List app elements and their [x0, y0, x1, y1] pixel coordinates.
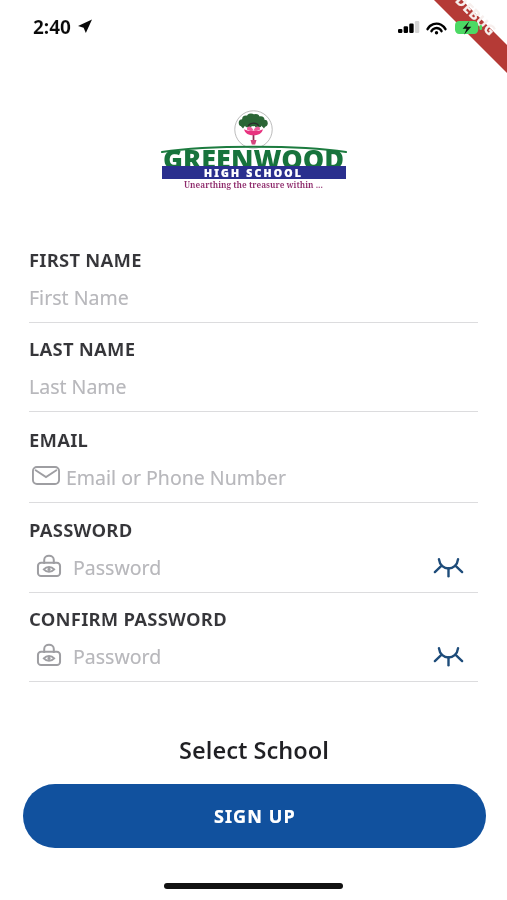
- button[interactable]: Last Name: [29, 372, 478, 400]
- button[interactable]: Select School: [0, 734, 507, 766]
- staticText: PASSWORD: [29, 517, 133, 542]
- staticText: Password: [73, 643, 428, 670]
- staticText: HIGH SCHOOL: [204, 166, 304, 179]
- staticText: DEBUG: [452, 0, 501, 40]
- staticText: SIGN UP: [214, 804, 296, 829]
- staticText: First Name: [29, 284, 478, 311]
- staticText: Last Name: [29, 373, 478, 400]
- button[interactable]: Password: [29, 553, 478, 581]
- staticText: GREENWOOD: [163, 140, 345, 177]
- button[interactable]: Password: [29, 642, 478, 670]
- button[interactable]: SIGN UP: [23, 784, 486, 848]
- button[interactable]: Show password: [428, 553, 468, 581]
- staticText: EMAIL: [29, 427, 89, 452]
- button[interactable]: Show password: [428, 642, 468, 670]
- staticText: CONFIRM PASSWORD: [29, 606, 227, 631]
- staticText: FIRST NAME: [29, 247, 142, 272]
- button[interactable]: Email or Phone Number: [29, 463, 478, 491]
- staticText: Unearthing the treasure within ...: [184, 179, 323, 190]
- staticText: Select School: [179, 734, 329, 766]
- staticText: Password: [73, 554, 428, 581]
- staticText: Email or Phone Number: [66, 464, 478, 491]
- staticText: 2:40: [33, 14, 71, 40]
- staticText: LAST NAME: [29, 336, 136, 361]
- button[interactable]: First Name: [29, 283, 478, 311]
